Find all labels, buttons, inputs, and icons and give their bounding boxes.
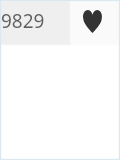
staticText: 9829 — [1, 8, 45, 34]
button[interactable]: 9829 — [0, 0, 71, 46]
button[interactable]: Favorite — [71, 0, 120, 46]
